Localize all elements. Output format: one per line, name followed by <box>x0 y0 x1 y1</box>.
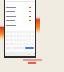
button[interactable] <box>5 15 35 18</box>
button[interactable] <box>5 24 35 27</box>
button[interactable] <box>5 10 35 13</box>
button[interactable] <box>5 6 35 9</box>
button[interactable] <box>5 19 35 22</box>
